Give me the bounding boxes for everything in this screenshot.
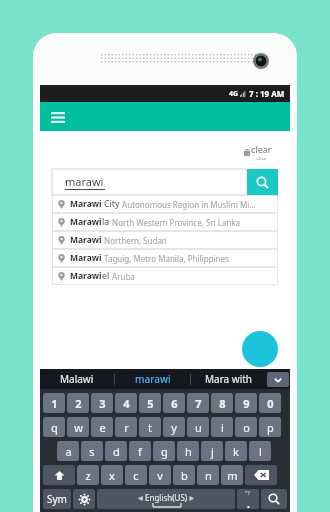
staticText: el	[102, 270, 110, 282]
staticText: Taguig, Metro Manila, Philippines	[102, 253, 229, 264]
button[interactable]: a	[57, 441, 79, 461]
button[interactable]: Menu	[47, 106, 69, 128]
button[interactable]: 8	[211, 393, 233, 413]
staticText: q	[51, 420, 58, 435]
button[interactable]: k	[225, 441, 247, 461]
button[interactable]: Backspace	[245, 465, 277, 485]
staticText: 4G	[229, 89, 239, 99]
button[interactable]: b	[173, 465, 195, 485]
button[interactable]: Expand suggestions	[267, 372, 289, 387]
button[interactable]: marawi	[52, 169, 247, 195]
button[interactable]: 2	[67, 393, 89, 413]
button[interactable]: p	[259, 417, 281, 437]
staticText: r	[124, 420, 129, 435]
button[interactable]: 5	[139, 393, 161, 413]
button[interactable]: Shift	[43, 465, 75, 485]
staticText: l	[259, 444, 262, 459]
button[interactable]: l	[249, 441, 271, 461]
staticText: 5	[147, 396, 154, 411]
staticText: la	[102, 216, 110, 228]
staticText: s	[89, 444, 95, 459]
button[interactable]: Marawi	[52, 231, 278, 249]
staticText: 8	[219, 396, 226, 411]
button[interactable]: Marawi	[52, 249, 278, 267]
staticText: f	[138, 444, 142, 459]
button[interactable]: Sym	[43, 489, 71, 509]
button[interactable]: f	[129, 441, 151, 461]
button[interactable]: h	[177, 441, 199, 461]
staticText: x	[109, 468, 115, 483]
staticText: Aruba	[110, 271, 135, 282]
button[interactable]: g	[153, 441, 175, 461]
button[interactable]: clear	[244, 143, 272, 161]
button[interactable]: Settings	[73, 489, 95, 509]
button[interactable]: y	[163, 417, 185, 437]
button[interactable]: 3	[91, 393, 113, 413]
staticText: 6	[171, 396, 178, 411]
staticText: g	[161, 444, 168, 459]
button[interactable]: Space	[97, 489, 235, 509]
button[interactable]: j	[201, 441, 223, 461]
staticText: t	[148, 420, 152, 435]
staticText: 1	[51, 396, 58, 411]
button[interactable]: z	[77, 465, 99, 485]
button[interactable]: d	[105, 441, 127, 461]
staticText: z	[85, 468, 91, 483]
staticText: i	[221, 420, 224, 435]
button[interactable]: 0	[259, 393, 281, 413]
button[interactable]: o	[235, 417, 257, 437]
staticText: ◀	[138, 494, 145, 502]
staticText: j	[211, 444, 214, 459]
staticText: English(US)	[145, 492, 188, 503]
button[interactable]: 4	[115, 393, 137, 413]
button[interactable]: m	[221, 465, 243, 485]
button[interactable]: Add	[242, 331, 278, 367]
button[interactable]: x	[101, 465, 123, 485]
button[interactable]: Marawi	[52, 213, 278, 231]
button[interactable]: c	[125, 465, 147, 485]
button[interactable]: 9	[235, 393, 257, 413]
staticText: v	[157, 468, 163, 483]
button[interactable]: s	[81, 441, 103, 461]
staticText: City	[104, 198, 120, 210]
button[interactable]: u	[187, 417, 209, 437]
button[interactable]: Malawi	[40, 369, 114, 389]
button[interactable]: 1	[43, 393, 65, 413]
button[interactable]: w	[67, 417, 89, 437]
staticText: ▶	[188, 494, 195, 502]
staticText: 2	[75, 396, 82, 411]
button[interactable]: "?	[237, 489, 259, 509]
button[interactable]: Mara with	[191, 369, 266, 389]
staticText: 7	[195, 396, 202, 411]
button[interactable]: 7	[187, 393, 209, 413]
button[interactable]: n	[197, 465, 219, 485]
button[interactable]: 6	[163, 393, 185, 413]
staticText: 7 : 19 AM	[249, 88, 285, 99]
staticText: u	[195, 420, 202, 435]
button[interactable]: i	[211, 417, 233, 437]
staticText: k	[233, 444, 239, 459]
button[interactable]: r	[115, 417, 137, 437]
staticText: Marawi	[70, 252, 102, 264]
staticText: Sym	[47, 492, 67, 506]
staticText: w	[74, 420, 83, 435]
button[interactable]: q	[43, 417, 65, 437]
button[interactable]: Search	[261, 489, 287, 509]
button[interactable]: Marawi	[52, 267, 278, 285]
staticText: Marawi	[70, 270, 102, 282]
staticText: e	[99, 420, 106, 435]
staticText: clear	[251, 143, 272, 155]
button[interactable]: Search	[247, 169, 278, 195]
button[interactable]: t	[139, 417, 161, 437]
staticText: h	[185, 444, 192, 459]
staticText: 9	[243, 396, 250, 411]
button[interactable]: e	[91, 417, 113, 437]
button[interactable]: v	[149, 465, 171, 485]
staticText: marawi	[65, 174, 104, 189]
button[interactable]: marawi	[115, 369, 190, 389]
staticText: حذف	[256, 155, 267, 161]
staticText: Malawi	[60, 372, 94, 386]
button[interactable]: Marawi	[52, 195, 278, 213]
staticText: c	[133, 468, 139, 483]
staticText: 4	[123, 396, 130, 411]
